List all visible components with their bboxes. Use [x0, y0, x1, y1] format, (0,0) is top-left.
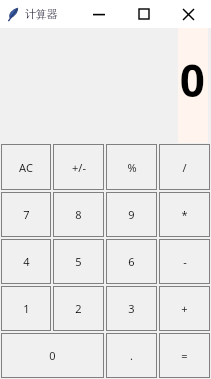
staticText: 9: [128, 207, 135, 222]
button[interactable]: .: [107, 334, 156, 377]
button[interactable]: 4: [2, 240, 50, 283]
staticText: 0: [49, 348, 56, 363]
button[interactable]: 7: [2, 193, 50, 236]
staticText: 1: [23, 301, 30, 316]
button[interactable]: 5: [54, 240, 103, 283]
staticText: 6: [128, 254, 135, 269]
staticText: +/-: [72, 160, 86, 175]
staticText: 8: [75, 207, 82, 222]
button[interactable]: +: [160, 287, 209, 330]
button[interactable]: Minimize: [76, 0, 121, 28]
staticText: 3: [128, 301, 135, 316]
staticText: 5: [75, 254, 82, 269]
button[interactable]: 1: [2, 287, 50, 330]
button[interactable]: 6: [107, 240, 156, 283]
staticText: .: [130, 348, 133, 363]
button[interactable]: Close: [166, 0, 211, 28]
button[interactable]: -: [160, 240, 209, 283]
button[interactable]: =: [160, 334, 209, 377]
staticText: =: [181, 348, 188, 363]
staticText: -: [183, 254, 187, 269]
button[interactable]: +/-: [54, 145, 103, 189]
button[interactable]: /: [160, 145, 209, 189]
staticText: AC: [19, 160, 33, 175]
button[interactable]: 2: [54, 287, 103, 330]
staticText: /: [182, 160, 187, 175]
staticText: 计算器: [25, 7, 58, 21]
button[interactable]: 8: [54, 193, 103, 236]
staticText: %: [127, 160, 137, 175]
staticText: 2: [75, 301, 82, 316]
button[interactable]: 0: [2, 334, 103, 377]
staticText: 7: [23, 207, 30, 222]
staticText: *: [181, 207, 188, 222]
staticText: +: [181, 301, 188, 316]
button[interactable]: 3: [107, 287, 156, 330]
staticText: 4: [23, 254, 30, 269]
staticText: 0: [179, 50, 205, 110]
button[interactable]: *: [160, 193, 209, 236]
button[interactable]: AC: [2, 145, 50, 189]
button[interactable]: 9: [107, 193, 156, 236]
button[interactable]: %: [107, 145, 156, 189]
button[interactable]: Maximize: [121, 0, 166, 28]
